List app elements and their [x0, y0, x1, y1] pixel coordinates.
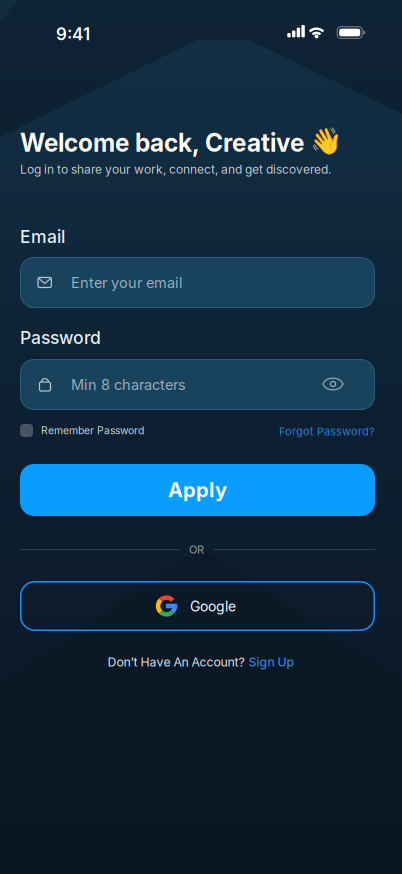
button[interactable]: Min 8 characters — [20, 359, 375, 410]
button[interactable]: Enter your email — [20, 257, 375, 308]
staticText: 👋 — [310, 126, 342, 156]
staticText: Remember Password — [41, 424, 144, 437]
staticText: Google — [190, 598, 236, 615]
staticText: Min 8 characters — [71, 376, 186, 393]
staticText: Log in to share your work, connect, and … — [20, 162, 331, 176]
staticText: Don’t Have An Account? — [107, 655, 244, 669]
staticText: OR — [189, 543, 204, 556]
staticText: Welcome back, Creative — [20, 128, 304, 158]
staticText: 9:41 — [56, 24, 90, 44]
staticText: Apply — [168, 478, 227, 502]
staticText: Enter your email — [71, 274, 183, 291]
staticText: Sign Up — [248, 655, 294, 669]
button[interactable]: Forgot Password? — [215, 424, 375, 438]
staticText: Password — [20, 327, 101, 348]
button[interactable]: Apply — [20, 464, 375, 516]
button[interactable]: Google — [20, 581, 375, 631]
staticText: Forgot Password? — [279, 425, 375, 438]
button[interactable]: Sign Up — [248, 655, 294, 669]
button[interactable]: Show password — [317, 373, 349, 395]
button[interactable]: Remember Password — [20, 424, 144, 437]
staticText: Email — [20, 226, 65, 247]
